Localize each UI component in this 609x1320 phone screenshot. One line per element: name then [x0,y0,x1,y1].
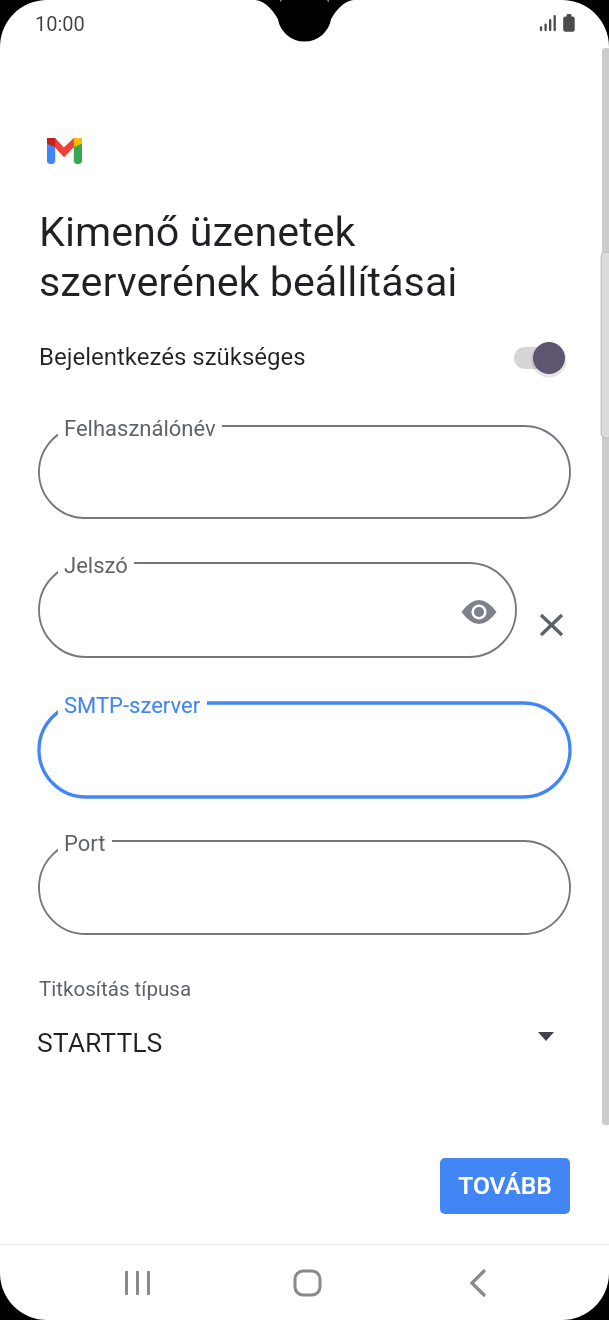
staticText: TOVÁBB [440,1171,570,1205]
button[interactable]: Bejelentkezés szükséges [0,330,609,388]
button[interactable]: Jelszó megjelenítése [457,591,501,633]
button[interactable]: Legutóbbi alkalmazások [100,1252,176,1314]
staticText: Bejelentkezés szükséges [39,343,306,371]
button[interactable] [39,563,516,657]
staticText: SMTP-szerver [64,693,201,719]
staticText: Felhasználónév [64,416,216,442]
staticText: Kimenő üzenetek szerverének beállításai [39,208,458,306]
button[interactable]: STARTTLS [0,1012,609,1074]
staticText: Titkosítás típusa [39,977,192,1001]
staticText: Jelszó [64,553,128,579]
button[interactable]: TOVÁBB [440,1158,570,1214]
button[interactable] [39,426,570,518]
button[interactable]: Kezdőképernyő [270,1252,346,1314]
staticText: Port [64,831,106,857]
staticText: 10:00 [35,12,85,35]
button[interactable] [39,703,570,797]
button[interactable]: Törlés [529,603,574,647]
button[interactable] [39,841,570,934]
staticText: STARTTLS [37,1027,163,1058]
button[interactable]: Vissza [440,1252,516,1314]
